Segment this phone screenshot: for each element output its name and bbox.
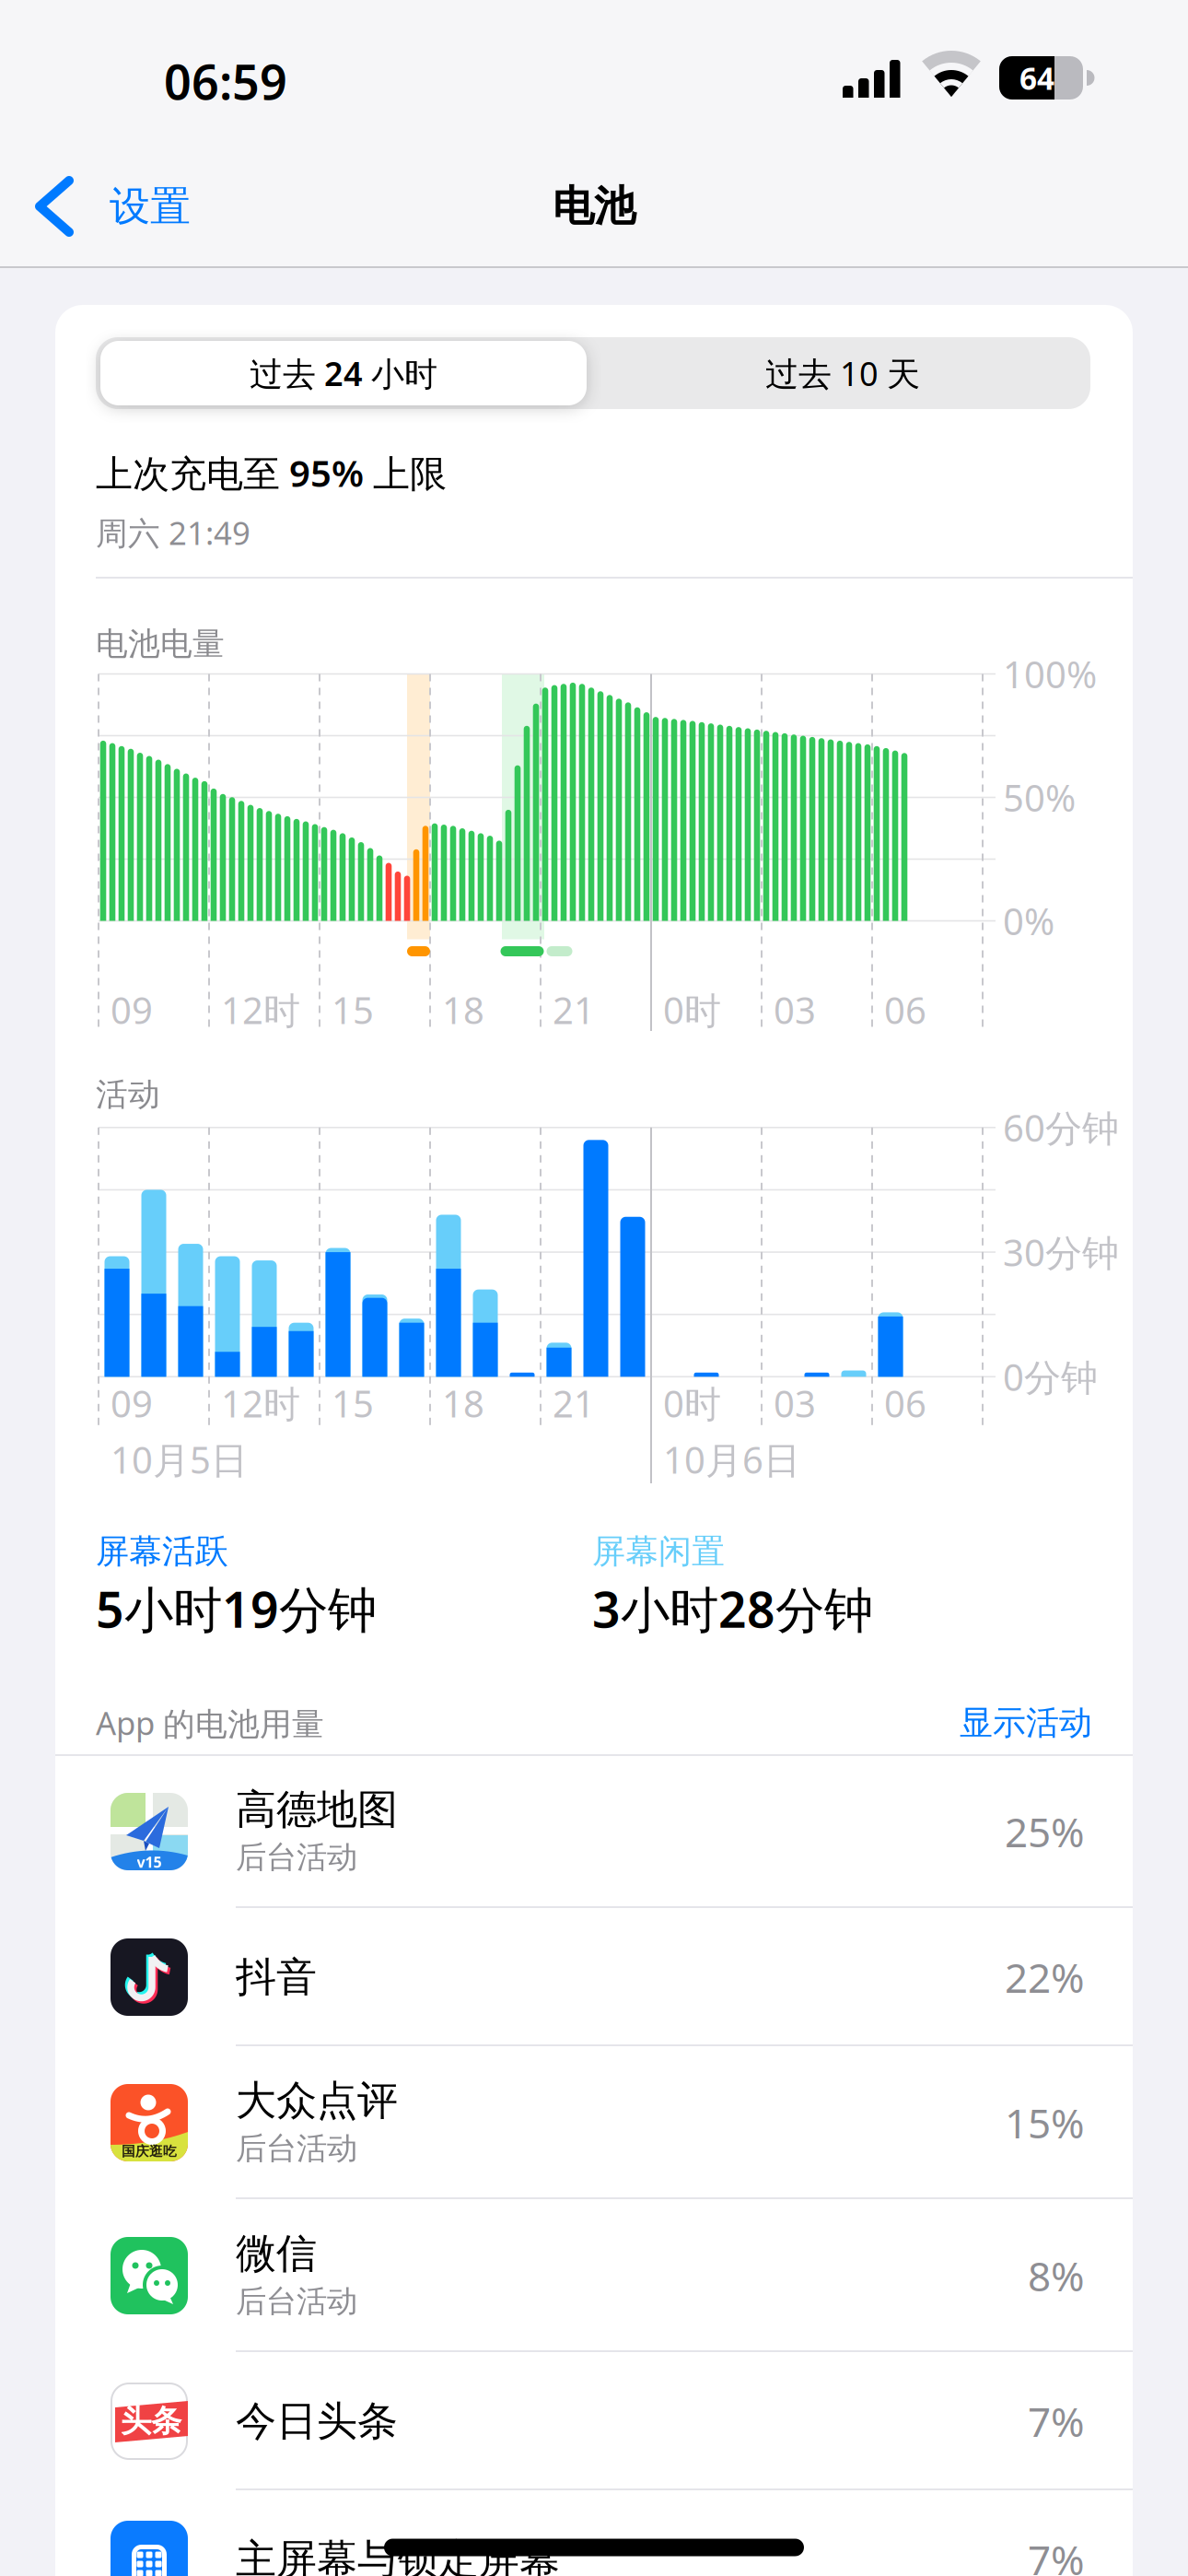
button[interactable]: 显示活动 <box>816 1686 1092 1760</box>
staticText: 12时 <box>221 985 300 1034</box>
staticText: 8% <box>1028 2249 1085 2303</box>
staticText: 12时 <box>221 1379 300 1428</box>
staticText: 过去 10 天 <box>765 351 920 395</box>
staticText: 09 <box>111 985 153 1034</box>
button[interactable]: 主屏幕与锁定屏幕 <box>55 2490 1133 2576</box>
staticText: 屏幕闲置 <box>592 1531 725 1572</box>
staticText: 屏幕活跃 <box>96 1531 228 1572</box>
staticText: 头条 <box>121 2402 181 2440</box>
staticText: 06 <box>884 985 926 1034</box>
staticText: 50% <box>1003 773 1076 822</box>
staticText: 5小时19分钟 <box>96 1576 377 1641</box>
button[interactable]: 微信 <box>55 2199 1133 2352</box>
button[interactable]: 国庆逛吃 <box>55 2046 1133 2199</box>
staticText: 09 <box>111 1379 153 1428</box>
button[interactable]: 过去 24 小时 <box>98 339 589 407</box>
staticText: 0时 <box>663 985 721 1034</box>
staticText: 上次充电至 95% 上限 <box>96 448 447 497</box>
staticText: 抖音 <box>236 1952 317 2002</box>
staticText: 15 <box>332 1379 374 1428</box>
staticText: 设置 <box>110 181 191 231</box>
staticText: 10月5日 <box>111 1435 248 1484</box>
staticText: 21 <box>553 1379 595 1428</box>
staticText: 03 <box>774 1379 816 1428</box>
staticText: 30分钟 <box>1003 1228 1119 1277</box>
staticText: 0时 <box>663 1379 721 1428</box>
staticText: 7% <box>1028 2394 1085 2448</box>
staticText: 后台活动 <box>236 2283 357 2320</box>
staticText: 周六 21:49 <box>96 511 250 554</box>
staticText: v15 <box>137 1852 162 1872</box>
staticText: 大众点评 <box>236 2076 398 2125</box>
staticText: 主屏幕与锁定屏幕 <box>236 2535 560 2576</box>
staticText: 电池 <box>553 181 635 232</box>
button[interactable]: 抖音 <box>55 1908 1133 2046</box>
staticText: App 的电池用量 <box>96 1702 324 1744</box>
staticText: 60分钟 <box>1003 1103 1119 1152</box>
staticText: 后台活动 <box>236 1838 357 1876</box>
staticText: 3小时28分钟 <box>592 1576 873 1641</box>
staticText: 18 <box>442 1379 484 1428</box>
staticText: 0% <box>1003 896 1054 945</box>
staticText: 15% <box>1005 2096 1085 2150</box>
staticText: 10月6日 <box>663 1435 800 1484</box>
staticText: 22% <box>1005 1950 1085 2004</box>
staticText: 微信 <box>236 2229 317 2278</box>
staticText: 后台活动 <box>236 2130 357 2167</box>
staticText: 活动 <box>96 1075 160 1114</box>
button[interactable]: 返回设置 <box>12 156 224 257</box>
staticText: 国庆逛吃 <box>122 2143 177 2160</box>
staticText: 今日头条 <box>236 2396 398 2446</box>
staticText: 06:59 <box>164 49 287 113</box>
staticText: 高德地图 <box>236 1785 398 1834</box>
staticText: 过去 24 小时 <box>250 351 437 395</box>
staticText: 18 <box>442 985 484 1034</box>
staticText: 显示活动 <box>960 1703 1092 1743</box>
staticText: 电池电量 <box>96 624 225 664</box>
button[interactable]: 头条 <box>55 2352 1133 2490</box>
staticText: 0分钟 <box>1003 1352 1098 1401</box>
staticText: 15 <box>332 985 374 1034</box>
button[interactable]: v15 <box>55 1755 1133 1908</box>
staticText: 64 <box>1019 57 1054 98</box>
button[interactable]: 过去 10 天 <box>597 339 1089 407</box>
staticText: 03 <box>774 985 816 1034</box>
staticText: 7% <box>1028 2533 1085 2576</box>
staticText: 06 <box>884 1379 926 1428</box>
staticText: 100% <box>1003 649 1097 698</box>
staticText: 25% <box>1005 1805 1085 1858</box>
staticText: 21 <box>553 985 595 1034</box>
